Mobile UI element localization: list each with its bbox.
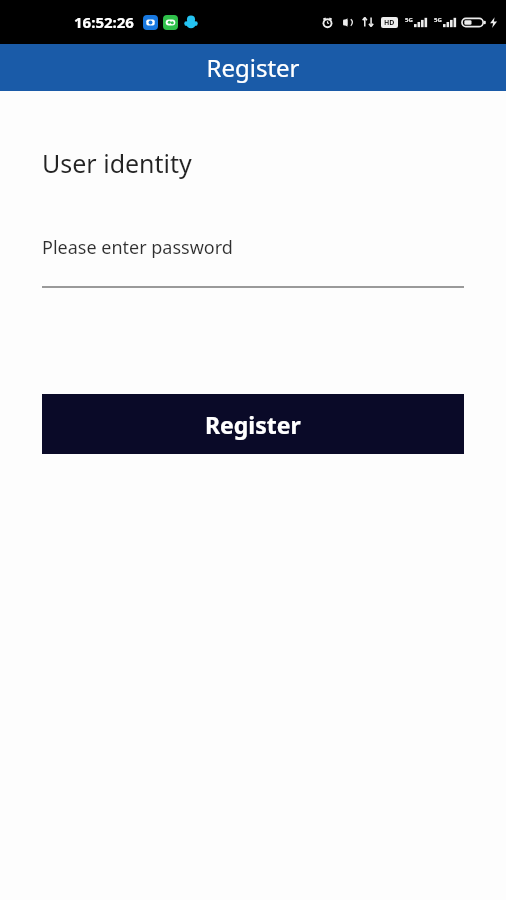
- staticText: 16:52:26: [74, 12, 134, 32]
- button[interactable]: Please enter password: [42, 235, 464, 288]
- staticText: Please enter password: [42, 235, 233, 260]
- staticText: Register: [206, 51, 300, 84]
- staticText: User identity: [42, 146, 192, 180]
- staticText: 5G: [405, 16, 413, 24]
- staticText: HD: [384, 18, 395, 28]
- staticText: Register: [205, 409, 301, 440]
- button[interactable]: Register: [42, 394, 464, 454]
- staticText: 5G: [434, 16, 442, 24]
